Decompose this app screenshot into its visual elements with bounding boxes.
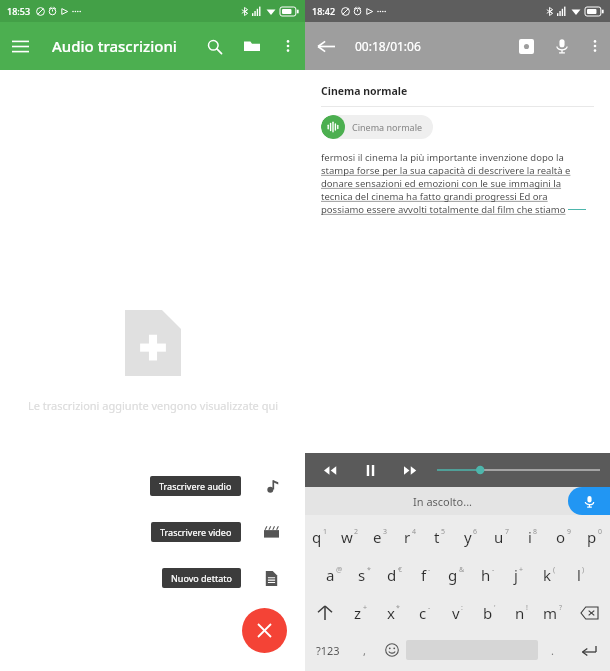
button[interactable]: m <box>537 594 569 632</box>
button[interactable]: Comma <box>350 632 378 668</box>
staticText: 9 <box>567 527 572 537</box>
staticText: fermosi il cinema la più importante inve… <box>321 151 564 164</box>
button[interactable]: a <box>319 556 349 594</box>
staticText: 1 <box>323 527 328 537</box>
button[interactable]: Trascrivere video <box>151 522 241 542</box>
staticText: t <box>434 527 440 547</box>
button[interactable]: c <box>409 594 441 632</box>
button[interactable]: Folder <box>233 27 271 65</box>
button[interactable]: n <box>505 594 537 632</box>
button[interactable]: Menu <box>0 26 40 66</box>
button[interactable]: k <box>534 556 565 594</box>
button[interactable]: Enter <box>566 632 610 668</box>
staticText: 7 <box>505 527 510 537</box>
staticText: g <box>448 565 458 585</box>
staticText: 2 <box>354 527 359 537</box>
button[interactable]: Voice input <box>568 487 610 515</box>
button[interactable]: i <box>517 518 548 556</box>
staticText: p <box>587 527 597 547</box>
button[interactable]: j <box>503 556 534 594</box>
staticText: a <box>326 565 335 585</box>
button[interactable]: Search <box>195 27 233 65</box>
button[interactable]: Trascrivere video <box>255 516 287 548</box>
button[interactable]: Nuovo dettato <box>255 562 287 594</box>
button[interactable]: w <box>335 518 365 556</box>
button[interactable]: Trascrivere audio <box>255 470 287 502</box>
button[interactable]: Close <box>242 608 287 653</box>
button[interactable]: f <box>410 556 441 594</box>
staticText: i <box>528 527 532 547</box>
button[interactable]: Trascrivere audio <box>150 476 241 496</box>
button[interactable]: y <box>455 518 486 556</box>
staticText: n <box>515 603 525 623</box>
staticText: 00:18/01:06 <box>355 38 421 54</box>
staticText: h <box>481 565 491 585</box>
button[interactable]: Cinema normale <box>321 115 433 139</box>
staticText: ' <box>494 603 496 613</box>
staticText: donare sensazioni ed emozioni con le sue… <box>321 177 562 190</box>
staticText: y <box>464 527 472 547</box>
staticText: - <box>492 565 495 575</box>
button[interactable]: v <box>441 594 473 632</box>
staticText: @ <box>336 565 343 575</box>
staticText: stampa forse per la sua capacità di desc… <box>321 164 571 177</box>
staticText: Trascrivere audio <box>159 480 232 492</box>
staticText: ?123 <box>316 643 340 658</box>
button[interactable]: b <box>473 594 505 632</box>
button[interactable]: h <box>472 556 503 594</box>
staticText: ! <box>526 603 528 613</box>
staticText: 3 <box>383 527 388 537</box>
button[interactable]: Emoji <box>378 632 406 668</box>
staticText: Audio trascrizioni <box>52 36 177 56</box>
button[interactable]: u <box>486 518 517 556</box>
staticText: : <box>461 603 463 613</box>
staticText: x <box>387 603 395 623</box>
staticText: tecnica del cinema ha fatto grandi progr… <box>321 190 548 203</box>
staticText: & <box>459 565 465 575</box>
staticText: 0 <box>598 527 603 537</box>
staticText: € <box>398 565 403 575</box>
staticText: possiamo essere avvolti totalmente dal f… <box>321 203 566 216</box>
button[interactable]: Shift <box>305 594 345 632</box>
staticText: v <box>452 603 460 623</box>
button[interactable]: Forward <box>397 457 423 483</box>
button[interactable]: Save <box>508 28 544 64</box>
staticText: s <box>358 565 366 585</box>
button[interactable]: Nuovo dettato <box>162 568 241 588</box>
staticText: ( <box>553 565 556 575</box>
button[interactable]: g <box>441 556 472 594</box>
button[interactable]: z <box>345 594 377 632</box>
button[interactable]: Seek <box>437 457 600 483</box>
button[interactable]: Pause <box>357 457 383 483</box>
button[interactable]: r <box>395 518 425 556</box>
button[interactable]: o <box>548 518 579 556</box>
staticText: - <box>428 565 431 575</box>
staticText: 6 <box>473 527 478 537</box>
staticText: 4 <box>412 527 417 537</box>
button[interactable]: s <box>349 556 379 594</box>
staticText: f <box>421 565 427 585</box>
button[interactable]: Back <box>305 25 347 67</box>
staticText: Cinema normale <box>352 121 423 133</box>
staticText: Le trascrizioni aggiunte vengono visuali… <box>23 398 283 413</box>
staticText: k <box>543 565 552 585</box>
button[interactable]: q <box>305 518 335 556</box>
button[interactable]: ?123 <box>305 632 350 668</box>
button[interactable]: Backspace <box>569 594 610 632</box>
button[interactable]: l <box>565 556 596 594</box>
button[interactable]: Period <box>538 632 566 668</box>
button[interactable]: t <box>425 518 455 556</box>
button[interactable]: Rewind <box>317 457 343 483</box>
staticText: In ascolto... <box>413 494 473 509</box>
button[interactable]: p <box>579 518 610 556</box>
button[interactable]: Microphone <box>544 28 580 64</box>
button[interactable]: d <box>379 556 410 594</box>
button[interactable]: More options <box>271 29 305 63</box>
button[interactable]: x <box>377 594 409 632</box>
staticText: * <box>396 603 400 613</box>
button[interactable]: e <box>365 518 395 556</box>
staticText: + <box>363 603 368 613</box>
button[interactable]: More options <box>580 31 610 61</box>
staticText: Nuovo dettato <box>171 572 232 584</box>
